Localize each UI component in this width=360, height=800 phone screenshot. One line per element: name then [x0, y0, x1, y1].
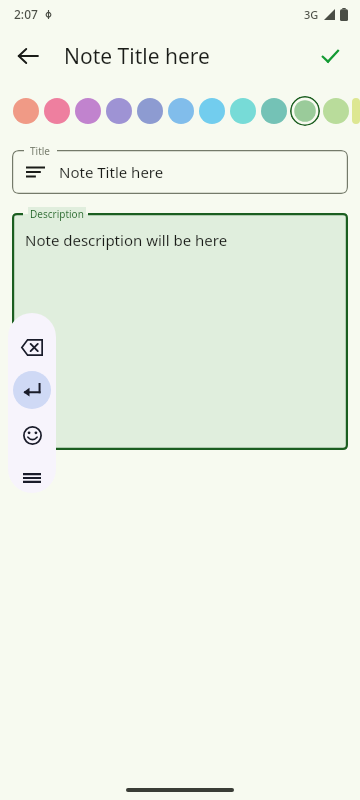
button[interactable]: Save note	[306, 32, 354, 80]
button[interactable]: Note description will be here	[12, 213, 348, 450]
button[interactable]: Backspace	[12, 327, 52, 367]
staticText: Title	[30, 144, 50, 158]
staticText: Note description will be here	[25, 230, 228, 250]
button[interactable]: Colour 11	[321, 96, 351, 126]
staticText: Note Title here	[59, 162, 164, 182]
staticText: Note Title here	[64, 42, 210, 71]
button[interactable]: Colour 12	[352, 96, 360, 126]
button[interactable]: Enter	[13, 371, 51, 409]
button[interactable]: Colour 3	[73, 96, 103, 126]
button[interactable]: Colour 7	[197, 96, 227, 126]
button[interactable]: More options	[12, 463, 52, 493]
button[interactable]: Colour 5	[135, 96, 165, 126]
button[interactable]: Note Title here	[12, 150, 348, 194]
button[interactable]: Colour 2	[42, 96, 72, 126]
staticText: 2:07	[14, 6, 38, 22]
staticText: Description	[30, 207, 84, 221]
button[interactable]: Back	[4, 32, 52, 80]
staticText: 3G	[304, 7, 319, 22]
button[interactable]: Colour 4	[104, 96, 134, 126]
button[interactable]: Colour 8	[228, 96, 258, 126]
button[interactable]: Colour 6	[166, 96, 196, 126]
button[interactable]: Colour 10	[290, 96, 320, 126]
button[interactable]: Emoji	[12, 415, 52, 455]
button[interactable]: Colour 9	[259, 96, 289, 126]
button[interactable]: Colour 1	[11, 96, 41, 126]
